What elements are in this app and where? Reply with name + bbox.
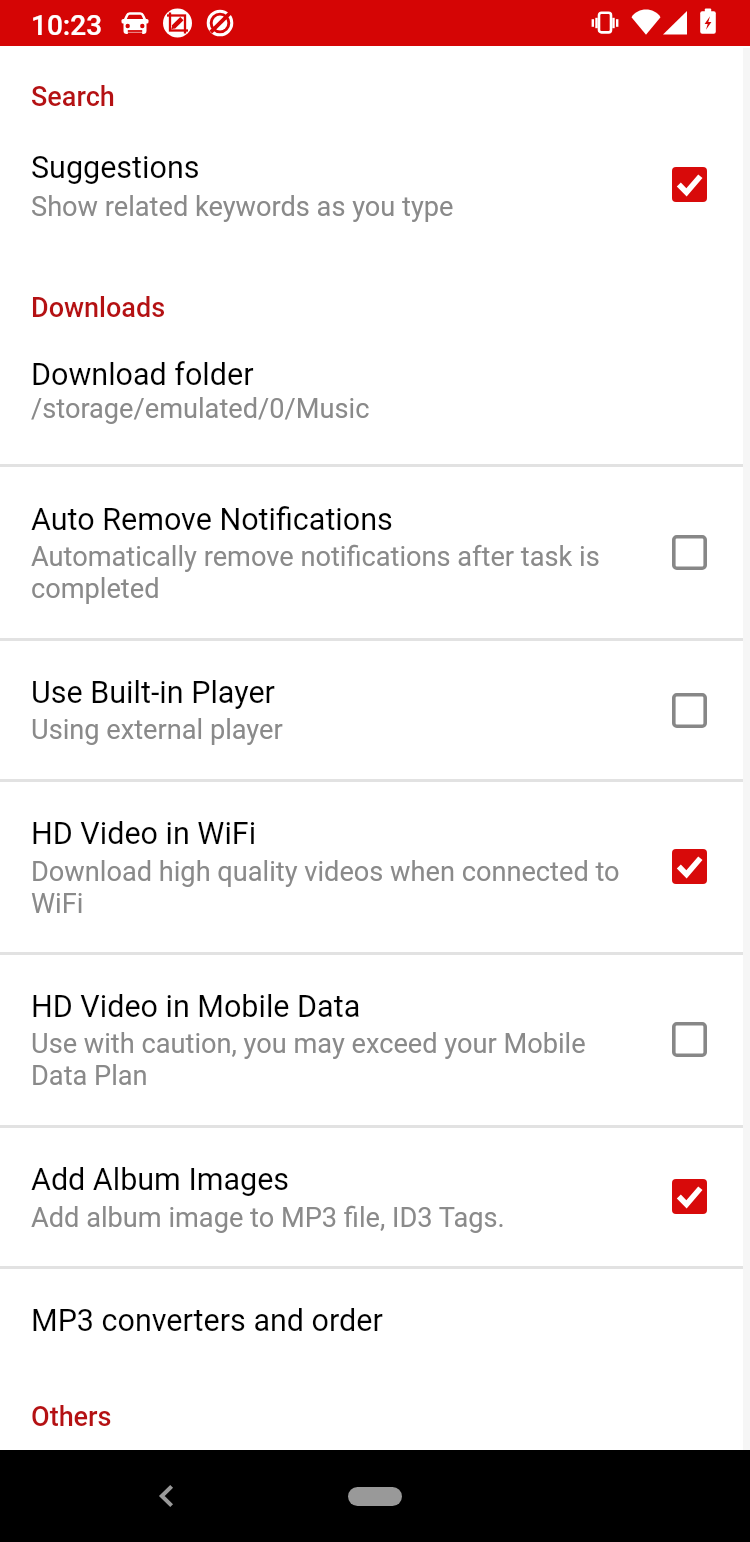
button[interactable] — [0, 330, 750, 465]
staticText: Using external player — [31, 714, 631, 746]
button[interactable] — [0, 1270, 750, 1370]
staticText: /storage/emulated/0/Music — [31, 393, 631, 425]
button[interactable] — [0, 120, 750, 270]
staticText: Downloads — [31, 292, 166, 324]
button[interactable] — [0, 1129, 750, 1267]
staticText: HD Video in WiFi — [31, 816, 257, 852]
button[interactable]: Enabled checkbox — [672, 167, 707, 202]
button[interactable]: Home — [320, 1474, 430, 1518]
staticText: Download folder — [31, 357, 254, 393]
staticText: Search — [31, 81, 115, 113]
button[interactable]: Back — [138, 1468, 194, 1524]
staticText: Automatically remove notifications after… — [31, 541, 631, 605]
staticText: Add album image to MP3 file, ID3 Tags. — [31, 1202, 631, 1234]
staticText: Download high quality videos when connec… — [31, 856, 631, 920]
button[interactable] — [0, 956, 750, 1126]
button[interactable] — [0, 468, 750, 639]
staticText: Suggestions — [31, 150, 200, 186]
button[interactable]: Disabled checkbox — [672, 693, 707, 728]
staticText: Use with caution, you may exceed your Mo… — [31, 1028, 631, 1092]
staticText: Use Built-in Player — [31, 675, 275, 711]
staticText: HD Video in Mobile Data — [31, 989, 361, 1025]
staticText: Add Album Images — [31, 1162, 290, 1198]
staticText: MP3 converters and order — [31, 1303, 383, 1339]
button[interactable]: Disabled checkbox — [672, 1022, 707, 1057]
button[interactable] — [0, 642, 750, 780]
button[interactable]: Enabled checkbox — [672, 849, 707, 884]
staticText: Show related keywords as you type — [31, 191, 631, 223]
button[interactable]: Disabled checkbox — [672, 535, 707, 570]
staticText: Auto Remove Notifications — [31, 502, 393, 538]
staticText: 10:23 — [31, 9, 103, 42]
staticText: Others — [31, 1401, 112, 1433]
button[interactable] — [0, 783, 750, 953]
button[interactable]: Enabled checkbox — [672, 1179, 707, 1214]
